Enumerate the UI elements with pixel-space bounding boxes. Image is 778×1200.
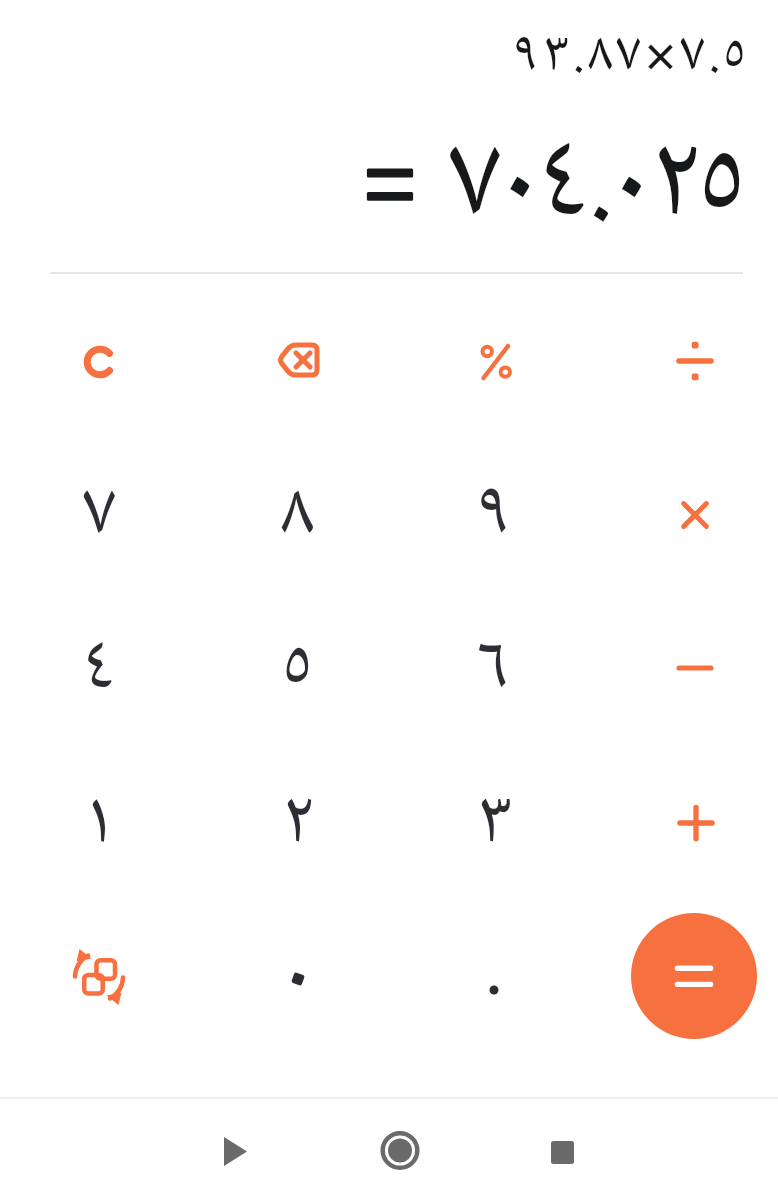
staticText: ٣ [476, 772, 512, 874]
staticText: ٤ [83, 617, 115, 719]
staticText: ٦ [477, 617, 511, 719]
staticText: ٧٠٤.٠٢٥ [449, 103, 745, 265]
staticText: ٧.٥×٩٣.٨٧ [514, 17, 749, 93]
staticText: ١ [87, 772, 111, 874]
staticText: ٢ [282, 772, 313, 874]
staticText: ٨ [281, 463, 314, 565]
staticText: ٩ [478, 463, 511, 565]
staticText: ٧ [83, 463, 116, 565]
staticText: ٥ [283, 617, 312, 719]
